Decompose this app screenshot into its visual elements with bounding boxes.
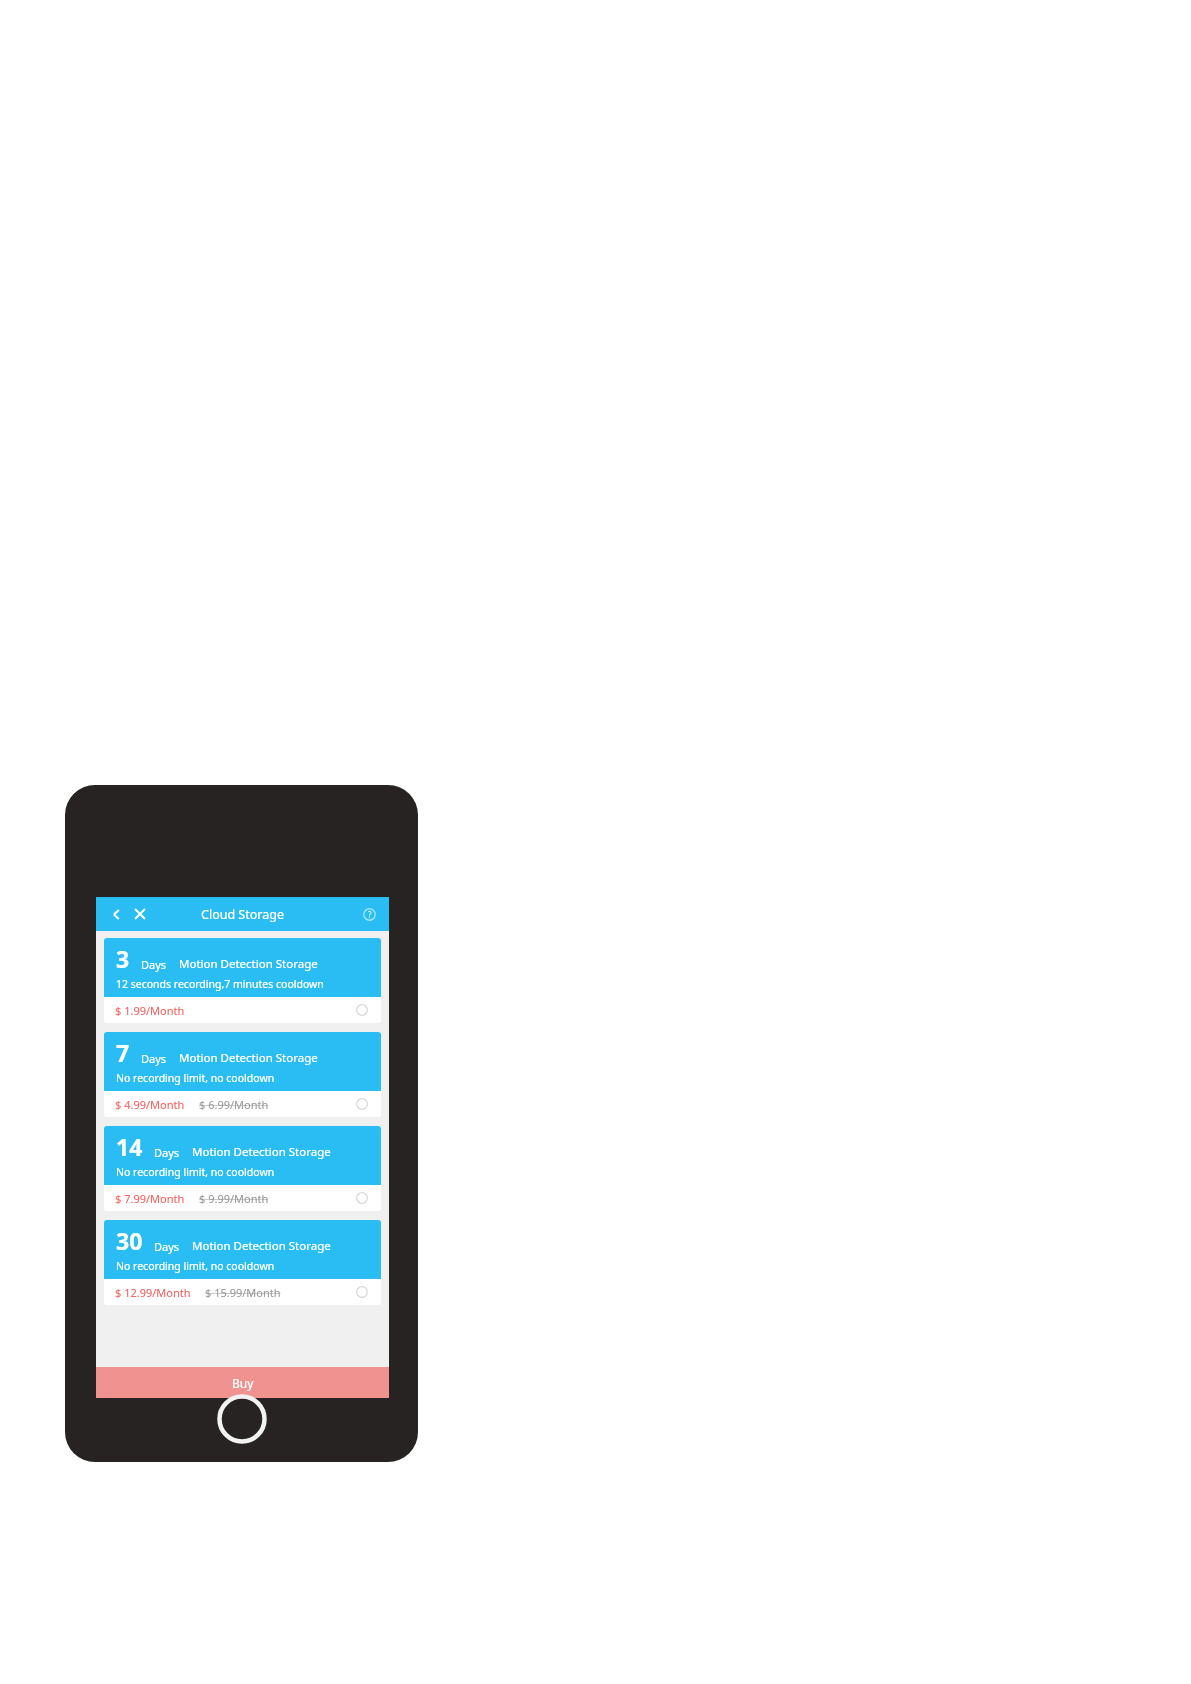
staticText: $ 4.99/Month [115, 1097, 185, 1112]
staticText: 7 [116, 1037, 130, 1068]
button[interactable]: Select plan [354, 1096, 370, 1112]
button[interactable]: Home [216, 1393, 268, 1445]
staticText: $ 7.99/Month [115, 1191, 185, 1206]
staticText: Motion Detection Storage [192, 1238, 331, 1254]
staticText: 14 [116, 1131, 143, 1162]
button[interactable]: Select plan [354, 1284, 370, 1300]
staticText: Days [141, 957, 167, 972]
staticText: ? [368, 909, 372, 920]
staticText: 30 [116, 1225, 143, 1256]
button[interactable]: Select plan [354, 1190, 370, 1206]
button[interactable]: 7 [104, 1032, 381, 1117]
staticText: 3 [116, 943, 130, 974]
button[interactable]: 30 [104, 1220, 381, 1305]
staticText: Days [141, 1051, 167, 1066]
button[interactable]: Back [105, 903, 127, 925]
staticText: No recording limit, no cooldown [116, 1165, 275, 1179]
button[interactable]: Help [358, 903, 380, 925]
button[interactable]: 3 [104, 938, 381, 1023]
staticText: $ 1.99/Month [115, 1003, 185, 1018]
staticText: Days [154, 1239, 180, 1254]
button[interactable]: Select plan [354, 1002, 370, 1018]
staticText: 12 seconds recording,7 minutes cooldown [116, 977, 324, 991]
staticText: No recording limit, no cooldown [116, 1259, 275, 1273]
staticText: Buy [232, 1375, 254, 1391]
button[interactable]: Close [129, 903, 151, 925]
button[interactable]: Buy [96, 1367, 389, 1398]
button[interactable]: 14 [104, 1126, 381, 1211]
staticText: Cloud Storage [201, 906, 284, 923]
staticText: Motion Detection Storage [179, 956, 318, 972]
staticText: Days [154, 1145, 180, 1160]
staticText: $ 12.99/Month [115, 1285, 191, 1300]
staticText: $ 9.99/Month [199, 1191, 269, 1206]
staticText: Motion Detection Storage [179, 1050, 318, 1066]
staticText: $ 6.99/Month [199, 1097, 269, 1112]
staticText: No recording limit, no cooldown [116, 1071, 275, 1085]
staticText: $ 15.99/Month [205, 1285, 281, 1300]
staticText: Motion Detection Storage [192, 1144, 331, 1160]
